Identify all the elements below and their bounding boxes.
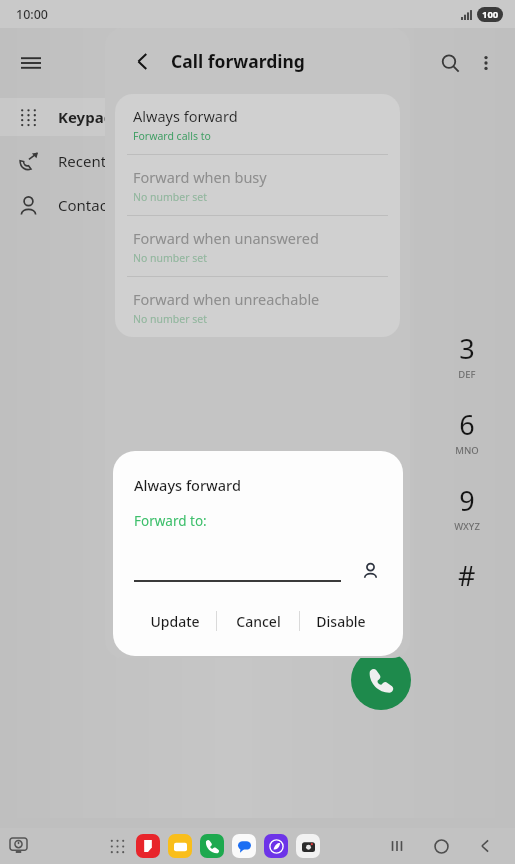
- button[interactable]: Recents: [375, 828, 419, 864]
- staticText: Always forward: [134, 475, 241, 495]
- staticText: Always forward: [133, 106, 238, 126]
- button[interactable]: [296, 834, 320, 858]
- staticText: Forward when unreachable: [133, 289, 320, 309]
- button[interactable]: Forward when unreachable: [115, 277, 400, 337]
- staticText: Contacts: [58, 195, 120, 215]
- staticText: Forward when unanswered: [133, 228, 319, 248]
- staticText: MNO: [455, 444, 479, 457]
- button[interactable]: Forward when busy: [115, 155, 400, 215]
- staticText: No number set: [133, 312, 208, 326]
- button[interactable]: [168, 834, 192, 858]
- button[interactable]: Back: [125, 44, 159, 78]
- button[interactable]: [200, 834, 224, 858]
- button[interactable]: [264, 834, 288, 858]
- button[interactable]: Back: [463, 828, 507, 864]
- staticText: 3: [459, 330, 475, 367]
- button[interactable]: [232, 834, 256, 858]
- button[interactable]: Forward when unanswered: [115, 216, 400, 276]
- staticText: 10:00: [16, 6, 49, 23]
- button[interactable]: Disable: [300, 604, 382, 638]
- button[interactable]: Update: [134, 604, 216, 638]
- button[interactable]: More options: [469, 46, 503, 80]
- button[interactable]: Contacts: [0, 186, 161, 224]
- staticText: WXYZ: [454, 520, 480, 533]
- staticText: Forward to:: [134, 512, 207, 530]
- staticText: 9: [459, 482, 475, 519]
- staticText: DEF: [458, 368, 476, 381]
- button[interactable]: Menu: [14, 46, 48, 80]
- staticText: #: [458, 557, 476, 594]
- staticText: No number set: [133, 251, 208, 265]
- staticText: Recents: [58, 151, 114, 171]
- staticText: Disable: [316, 612, 366, 631]
- button[interactable]: Recents: [0, 142, 161, 180]
- button[interactable]: #: [419, 552, 515, 598]
- staticText: Forward when busy: [133, 167, 267, 187]
- button[interactable]: Cancel: [217, 604, 299, 638]
- button[interactable]: [136, 834, 160, 858]
- staticText: 6: [459, 406, 475, 443]
- staticText: Cancel: [236, 612, 281, 631]
- button[interactable]: Choose contact: [358, 558, 382, 582]
- button[interactable]: Call: [351, 650, 411, 710]
- button[interactable]: Recent apps panel: [0, 828, 36, 864]
- staticText: Update: [150, 612, 200, 631]
- staticText: 100: [482, 8, 499, 21]
- staticText: No number set: [133, 190, 208, 204]
- staticText: Forward calls to: [133, 129, 211, 143]
- button[interactable]: 6: [419, 404, 515, 458]
- button[interactable]: Search: [431, 44, 469, 82]
- button[interactable]: Always forward: [115, 94, 400, 154]
- button[interactable]: All apps: [102, 831, 132, 861]
- button[interactable]: 3: [419, 328, 515, 382]
- button[interactable]: Home: [419, 828, 463, 864]
- staticText: Keypad: [58, 107, 114, 127]
- button[interactable]: 9: [419, 480, 515, 534]
- button[interactable]: [134, 564, 341, 582]
- button[interactable]: Keypad: [0, 98, 161, 136]
- staticText: Call forwarding: [171, 49, 305, 73]
